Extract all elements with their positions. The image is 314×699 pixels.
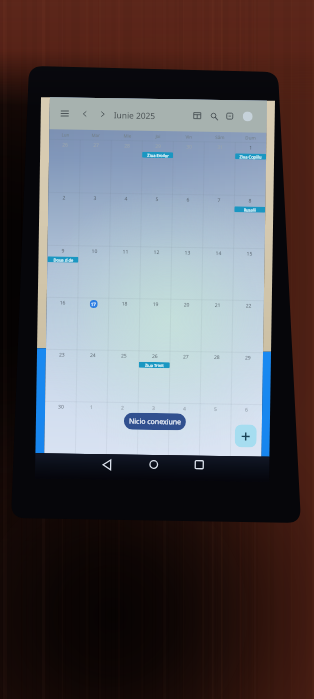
staticText: 6 [245, 406, 248, 413]
button[interactable]: 5 [199, 404, 231, 456]
button[interactable]: Next month [95, 106, 111, 122]
button[interactable]: 28 [110, 140, 142, 194]
button[interactable]: 27 [79, 140, 111, 193]
button[interactable]: 1 [234, 142, 266, 196]
staticText: 3 [152, 405, 155, 412]
button[interactable]: 8 [234, 195, 265, 249]
button[interactable]: 11 [109, 246, 141, 299]
button[interactable]: 4 [110, 193, 141, 247]
button[interactable]: 30 [172, 141, 204, 195]
button[interactable]: Recent apps [190, 456, 208, 474]
staticText: 7 [217, 197, 220, 204]
button[interactable]: 23 [45, 349, 77, 402]
button[interactable]: 22 [232, 300, 264, 353]
staticText: Vin [185, 133, 192, 140]
button[interactable]: Search [206, 108, 222, 124]
button[interactable]: 25 [107, 350, 139, 403]
staticText: Rusalii [243, 207, 256, 213]
button[interactable]: 7 [203, 195, 234, 248]
button[interactable]: Rusalii [234, 206, 265, 213]
button[interactable]: 13 [171, 247, 203, 300]
button[interactable]: 21 [201, 300, 233, 352]
button[interactable]: 2 [106, 402, 138, 455]
button[interactable]: Iunie 2025 [113, 98, 156, 131]
staticText: 6 [186, 196, 189, 203]
staticText: 12 [153, 249, 160, 256]
staticText: 29 [245, 354, 251, 361]
staticText: 23 [59, 351, 65, 359]
button[interactable]: 31 [203, 142, 235, 195]
staticText: Ziua Copiilu [239, 154, 262, 160]
staticText: Lun [61, 131, 69, 138]
button[interactable]: 10 [78, 246, 110, 298]
button[interactable]: 17 [77, 298, 109, 350]
button[interactable]: 20 [170, 299, 202, 352]
staticText: 18 [122, 300, 128, 308]
button[interactable]: 26 [48, 139, 80, 193]
button[interactable]: 14 [202, 248, 234, 300]
staticText: 2 [121, 404, 124, 411]
button[interactable]: 12 [140, 247, 172, 299]
button[interactable]: Ziua Copiilu [235, 153, 266, 160]
button[interactable]: 3 [137, 403, 169, 455]
button[interactable]: Home [144, 455, 162, 473]
staticText: Nicio conexiune [129, 417, 182, 427]
button[interactable]: Ziua Trinit [139, 362, 170, 368]
staticText: 26 [152, 353, 158, 360]
staticText: 13 [184, 249, 191, 257]
staticText: 4 [183, 405, 186, 412]
button[interactable]: Menu [57, 105, 73, 122]
button[interactable]: 6 [230, 404, 262, 457]
button[interactable]: 2 [48, 192, 79, 246]
button[interactable]: 30 [44, 401, 76, 454]
staticText: Dum [245, 134, 256, 141]
staticText: 5 [155, 196, 158, 203]
button[interactable]: Ziua Eroilor [142, 152, 173, 158]
button[interactable]: 6 [172, 194, 203, 248]
button[interactable]: Go to today [222, 108, 238, 124]
button[interactable]: Doua zi de [47, 256, 78, 263]
staticText: 2 [62, 194, 65, 201]
button[interactable]: Change view [189, 107, 205, 124]
button[interactable]: 4 [168, 403, 200, 456]
button[interactable]: 3 [79, 193, 110, 246]
staticText: 30 [186, 143, 192, 151]
button[interactable]: 19 [139, 299, 171, 351]
staticText: 22 [246, 302, 252, 309]
staticText: 30 [58, 403, 64, 411]
button[interactable]: 24 [76, 350, 108, 402]
button[interactable]: 16 [46, 297, 78, 350]
staticText: 21 [215, 302, 221, 309]
button[interactable]: Previous month [77, 106, 93, 122]
staticText: 3 [93, 195, 96, 202]
staticText: Ziua Eroilor [147, 153, 169, 158]
staticText: 27 [183, 353, 189, 360]
button[interactable]: 29 [141, 141, 173, 194]
button[interactable]: 9 [47, 245, 79, 298]
button[interactable]: 27 [169, 351, 201, 404]
staticText: 8 [248, 197, 251, 204]
staticText: 5 [214, 406, 217, 413]
staticText: 25 [121, 352, 127, 360]
button[interactable]: 5 [141, 194, 172, 247]
staticText: 17 [91, 301, 97, 307]
button[interactable]: 29 [231, 352, 263, 405]
staticText: 1 [90, 404, 93, 411]
staticText: 15 [246, 250, 253, 257]
staticText: Iunie 2025 [114, 109, 156, 121]
button[interactable]: 28 [200, 352, 232, 404]
button[interactable]: 18 [108, 298, 140, 351]
button[interactable]: Back [97, 455, 115, 473]
button[interactable]: Nicio conexiune [124, 412, 186, 430]
button[interactable]: Create new event [234, 424, 257, 448]
staticText: 27 [93, 142, 99, 149]
button[interactable]: 1 [75, 402, 107, 454]
staticText: 20 [184, 301, 190, 309]
staticText: 16 [60, 299, 66, 307]
button[interactable]: Account [243, 111, 253, 122]
staticText: 19 [153, 301, 159, 308]
button[interactable]: 15 [233, 248, 265, 301]
button[interactable]: 26 [138, 351, 170, 403]
staticText: Joi [155, 133, 161, 139]
staticText: 31 [217, 144, 223, 151]
